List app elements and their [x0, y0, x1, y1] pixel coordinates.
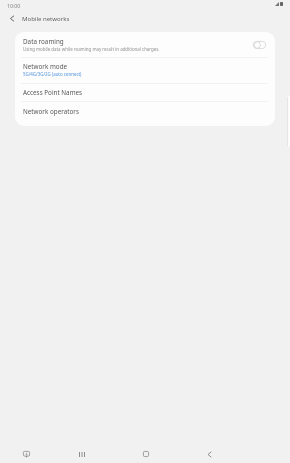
staticText: Access Point Names [23, 88, 83, 97]
button[interactable]: Data roaming [15, 32, 275, 57]
staticText: Network mode [23, 62, 68, 71]
staticText: Mobile networks [22, 15, 70, 23]
button[interactable]: Data roaming switch, off [253, 37, 266, 53]
button[interactable]: Recent apps [71, 443, 93, 463]
button[interactable]: Back [198, 443, 220, 463]
staticText: Data roaming [23, 37, 64, 46]
button[interactable]: Access Point Names [15, 84, 275, 101]
button[interactable]: Home [135, 443, 157, 463]
staticText: 5G/4G/3G/2G (auto connect) [23, 71, 82, 77]
button[interactable]: Navigate up [4, 11, 19, 26]
button[interactable]: Network mode [15, 58, 275, 83]
staticText: Using mobile data while roaming may resu… [23, 46, 160, 52]
button[interactable]: Network operators [15, 102, 275, 120]
staticText: 10:00 [7, 2, 21, 9]
staticText: Network operators [23, 107, 79, 116]
button[interactable]: Hide keyboard [15, 443, 37, 463]
